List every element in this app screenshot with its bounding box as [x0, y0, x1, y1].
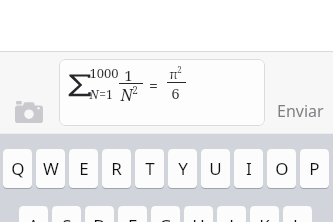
button[interactable]: R — [102, 149, 131, 189]
staticText: Y — [178, 157, 188, 180]
staticText: Enviar — [277, 100, 324, 122]
staticText: 1000 — [89, 64, 119, 82]
staticText: H — [192, 214, 205, 222]
button[interactable]: O — [267, 149, 296, 189]
staticText: Q — [11, 157, 25, 180]
staticText: S — [62, 214, 72, 222]
staticText: T — [145, 157, 155, 180]
button[interactable]: Y — [168, 149, 197, 189]
staticText: D — [93, 214, 106, 222]
button[interactable]: Enviar — [277, 100, 324, 122]
button[interactable]: H — [184, 206, 213, 222]
button[interactable]: G — [151, 206, 180, 222]
staticText: W — [43, 157, 59, 180]
staticText: U — [209, 157, 222, 180]
staticText: π — [169, 65, 178, 83]
staticText: N — [120, 84, 133, 106]
staticText: = — [149, 75, 158, 97]
button[interactable]: F — [118, 206, 147, 222]
staticText: 1 — [124, 65, 133, 85]
staticText: 2 — [132, 83, 138, 97]
staticText: J — [229, 214, 234, 222]
staticText: G — [159, 214, 172, 222]
button[interactable]: A — [19, 206, 48, 222]
button[interactable]: P — [300, 149, 329, 189]
staticText: A — [28, 214, 39, 222]
staticText: =1 — [99, 86, 113, 102]
staticText: I — [246, 157, 252, 180]
staticText: 6 — [171, 83, 180, 103]
button[interactable]: 1000 — [59, 59, 265, 126]
staticText: P — [309, 157, 320, 180]
staticText: R — [111, 157, 122, 180]
button[interactable]: U — [201, 149, 230, 189]
button[interactable]: L — [283, 206, 312, 222]
staticText: O — [275, 157, 289, 180]
button[interactable]: J — [217, 206, 246, 222]
staticText: L — [293, 214, 302, 222]
staticText: E — [79, 157, 89, 180]
staticText: 2 — [177, 64, 182, 75]
button[interactable]: E — [69, 149, 98, 189]
staticText: N — [89, 86, 99, 102]
button[interactable]: I — [234, 149, 263, 189]
button[interactable]: K — [250, 206, 279, 222]
button[interactable]: D — [85, 206, 114, 222]
button[interactable]: T — [135, 149, 164, 189]
button[interactable]: Take photo — [14, 99, 44, 125]
staticText: F — [128, 214, 137, 222]
button[interactable]: S — [52, 206, 81, 222]
button[interactable]: Q — [3, 149, 32, 189]
staticText: K — [259, 214, 270, 222]
button[interactable]: W — [36, 149, 65, 189]
